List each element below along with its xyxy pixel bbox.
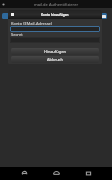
button[interactable]: Abbruch	[11, 56, 99, 63]
button[interactable]	[10, 37, 100, 43]
button[interactable]: Recent apps	[80, 167, 96, 180]
staticText: Hinzufügen	[44, 49, 66, 54]
staticText: Secret	[11, 32, 23, 37]
button[interactable]	[10, 26, 100, 32]
button[interactable]: Back	[16, 167, 32, 180]
staticText: Konto (EMail-Adresse)	[11, 21, 53, 26]
button[interactable]: Hinzufügen	[11, 48, 99, 55]
button[interactable]: Home	[48, 167, 64, 180]
staticText: Abbruch	[47, 57, 63, 62]
button[interactable]: Account	[2, 13, 12, 19]
staticText: Konto hinzufügen	[41, 13, 69, 17]
button[interactable]: Add account	[101, 13, 107, 19]
staticText: mail.de Authentifizierer	[34, 2, 79, 7]
